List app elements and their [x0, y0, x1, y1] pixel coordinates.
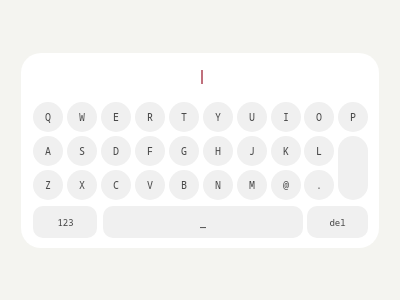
button[interactable]: D [101, 136, 131, 166]
staticText: F [147, 144, 153, 158]
button[interactable]: S [67, 136, 97, 166]
staticText: I [283, 110, 289, 124]
staticText: B [181, 178, 187, 192]
button[interactable]: P [338, 102, 368, 132]
staticText: E [113, 110, 119, 124]
button[interactable]: O [304, 102, 334, 132]
button[interactable]: H [203, 136, 233, 166]
button[interactable]: 123 [33, 206, 97, 238]
staticText: R [147, 110, 153, 124]
staticText: O [316, 110, 322, 124]
staticText: S [79, 144, 85, 158]
button[interactable]: W [67, 102, 97, 132]
button[interactable]: V [135, 170, 165, 200]
staticText: W [79, 110, 85, 124]
staticText: D [113, 144, 119, 158]
staticText: K [283, 144, 289, 158]
button[interactable]: I [271, 102, 301, 132]
button[interactable]: U [237, 102, 267, 132]
staticText: A [45, 144, 51, 158]
staticText: C [113, 178, 119, 192]
button[interactable]: K [271, 136, 301, 166]
staticText: U [249, 110, 255, 124]
button[interactable]: Q [33, 102, 63, 132]
staticText: M [249, 178, 255, 192]
staticText: . [316, 178, 322, 192]
button[interactable]: E [101, 102, 131, 132]
staticText: L [316, 144, 322, 158]
staticText: del [329, 216, 346, 228]
staticText: H [215, 144, 221, 158]
button[interactable]: R [135, 102, 165, 132]
staticText: 123 [57, 216, 74, 228]
staticText: V [147, 178, 153, 192]
staticText: J [249, 144, 255, 158]
staticText: T [181, 110, 187, 124]
button[interactable]: . [304, 170, 334, 200]
button[interactable]: N [203, 170, 233, 200]
staticText: Y [215, 110, 221, 124]
button[interactable]: J [237, 136, 267, 166]
staticText: X [79, 178, 85, 192]
staticText: G [181, 144, 187, 158]
staticText: _ [200, 215, 206, 229]
staticText: Q [45, 110, 51, 124]
button[interactable]: Enter [338, 136, 368, 200]
button[interactable]: L [304, 136, 334, 166]
button[interactable]: _ [103, 206, 303, 238]
staticText: Z [45, 178, 51, 192]
button[interactable]: F [135, 136, 165, 166]
button[interactable]: del [307, 206, 368, 238]
staticText: @ [283, 178, 289, 192]
staticText: N [215, 178, 221, 192]
button[interactable]: Y [203, 102, 233, 132]
button[interactable]: B [169, 170, 199, 200]
button[interactable]: T [169, 102, 199, 132]
button[interactable]: @ [271, 170, 301, 200]
button[interactable]: X [67, 170, 97, 200]
button[interactable]: C [101, 170, 131, 200]
button[interactable]: M [237, 170, 267, 200]
button[interactable]: A [33, 136, 63, 166]
button[interactable]: G [169, 136, 199, 166]
button[interactable]: Z [33, 170, 63, 200]
staticText: P [350, 110, 356, 124]
